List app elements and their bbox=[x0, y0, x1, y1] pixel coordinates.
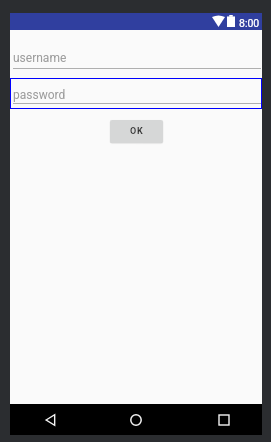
staticText: username bbox=[13, 51, 67, 65]
button[interactable]: OK bbox=[110, 120, 163, 143]
staticText: password bbox=[13, 88, 66, 102]
button[interactable]: Recent apps bbox=[204, 404, 244, 435]
staticText: OK bbox=[130, 126, 144, 137]
button[interactable] bbox=[10, 45, 262, 71]
button[interactable]: Home bbox=[116, 404, 156, 435]
button[interactable] bbox=[10, 78, 262, 109]
staticText: 8:00 bbox=[239, 17, 260, 29]
button[interactable]: Back bbox=[30, 404, 70, 435]
